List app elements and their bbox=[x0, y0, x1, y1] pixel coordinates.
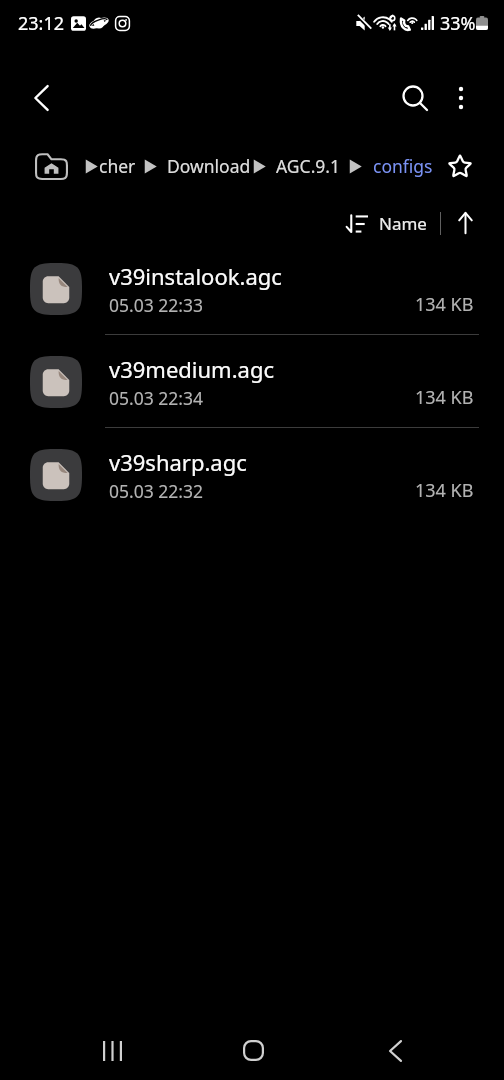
staticText: v39medium.agc bbox=[109, 354, 275, 384]
staticText: v39instalook.agc bbox=[109, 261, 282, 291]
button[interactable]: Home bbox=[225, 1022, 282, 1079]
button[interactable]: cher bbox=[99, 154, 136, 178]
button[interactable]: Add to favourites bbox=[437, 143, 483, 189]
button[interactable]: AGC.9.1 bbox=[276, 154, 341, 178]
button[interactable]: More options bbox=[437, 74, 485, 122]
staticText: Name bbox=[379, 212, 427, 235]
button[interactable]: Back bbox=[367, 1022, 424, 1079]
button[interactable]: Recent apps bbox=[84, 1022, 141, 1079]
staticText: v39sharp.agc bbox=[109, 447, 247, 477]
staticText: 134 KB bbox=[415, 478, 474, 503]
button[interactable]: v39medium.agc bbox=[0, 335, 504, 428]
staticText: 134 KB bbox=[415, 385, 474, 410]
staticText: 05.03 22:34 bbox=[109, 386, 204, 410]
button[interactable]: Sort order ascending bbox=[443, 203, 487, 243]
button[interactable]: Home folder bbox=[27, 142, 75, 190]
button[interactable]: Download bbox=[167, 154, 251, 178]
staticText: 23:12 bbox=[18, 11, 65, 36]
button[interactable]: Navigate up bbox=[17, 74, 65, 122]
button[interactable]: configs bbox=[373, 154, 433, 178]
button[interactable]: v39sharp.agc bbox=[0, 428, 504, 521]
staticText: 134 KB bbox=[415, 292, 474, 317]
staticText: 33% bbox=[440, 11, 476, 36]
staticText: 05.03 22:32 bbox=[109, 479, 204, 503]
staticText: 05.03 22:33 bbox=[109, 293, 204, 317]
button[interactable]: Name bbox=[340, 206, 433, 241]
button[interactable]: Search bbox=[391, 74, 439, 122]
button[interactable]: v39instalook.agc bbox=[0, 242, 504, 335]
